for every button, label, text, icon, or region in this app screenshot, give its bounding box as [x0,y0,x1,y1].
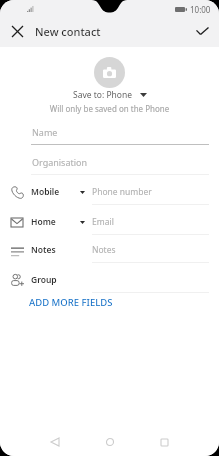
button[interactable]: Add photo [94,57,125,88]
staticText: Home [31,216,56,228]
button[interactable]: Name [0,120,219,150]
button[interactable]: Notes [0,238,219,268]
staticText: Notes [92,244,116,256]
button[interactable]: Group [0,268,219,296]
button[interactable]: Close [3,18,32,44]
button[interactable]: Recent apps [137,428,192,456]
staticText: 10:00 [190,4,211,15]
staticText: Phone number [92,186,152,198]
staticText: Name [32,126,58,138]
button[interactable]: Phone [0,180,219,210]
staticText: Mobile [31,186,60,198]
staticText: New contact [35,24,101,39]
staticText: Group [31,274,57,286]
staticText: ADD MORE FIELDS [29,296,113,309]
button[interactable]: Home [82,428,137,456]
staticText: Notes [31,244,56,256]
button[interactable]: Email [0,210,219,238]
button[interactable]: Save [187,18,217,44]
button[interactable]: Back [27,428,82,456]
staticText: Organisation [32,156,88,168]
staticText: Email [92,216,114,228]
button[interactable]: ADD MORE FIELDS [0,296,219,315]
button[interactable]: Save to: Phone [0,89,219,101]
staticText: Save to: Phone [73,89,133,101]
staticText: Will only be saved on the Phone [0,103,219,114]
button[interactable]: Organisation [0,150,219,180]
